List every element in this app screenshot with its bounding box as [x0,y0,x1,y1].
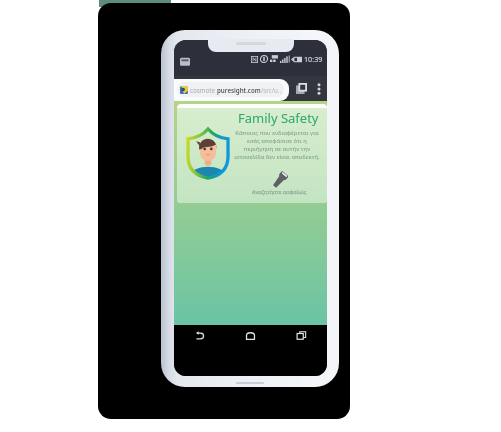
staticText: 10:39 [304,54,323,64]
staticText: Family Safety [238,109,319,127]
button[interactable]: Recents [276,325,327,376]
button[interactable]: Tabs [291,76,311,101]
staticText: /src/u.. [261,86,282,94]
button[interactable]: cosmote [177,82,284,97]
button[interactable]: Back [174,325,225,376]
button[interactable]: Home [225,325,276,376]
staticText: Κάποιος που ενδιαφέρεται για εσάς αποφάσ… [234,129,320,161]
staticText: puresight.com [217,86,261,94]
button[interactable]: More options [311,76,327,101]
staticText: Αναζητήστε ασφαλώς [252,188,307,195]
button[interactable]: Αναζητήστε ασφαλώς [235,188,323,195]
staticText: cosmote [190,86,217,94]
